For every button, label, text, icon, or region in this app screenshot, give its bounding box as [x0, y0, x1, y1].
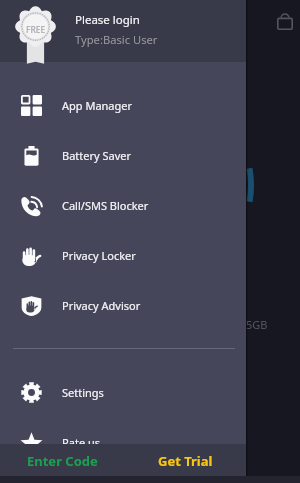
- button[interactable]: Battery Saver: [0, 130, 246, 180]
- button[interactable]: Please login: [0, 0, 246, 62]
- staticText: 5GB: [246, 317, 268, 332]
- staticText: Get Trial: [158, 452, 213, 470]
- staticText: Call/SMS Blocker: [62, 198, 149, 213]
- staticText: Privacy Advisor: [62, 298, 141, 313]
- button[interactable]: Store: [270, 6, 300, 36]
- staticText: Enter Code: [27, 452, 98, 470]
- button[interactable]: Get Trial: [125, 444, 246, 476]
- staticText: Rate us: [62, 435, 101, 450]
- staticText: Privacy Locker: [62, 248, 136, 263]
- button[interactable]: Enter Code: [0, 444, 125, 476]
- button[interactable]: Rate us: [0, 417, 246, 467]
- button[interactable]: App Manager: [0, 80, 246, 130]
- button[interactable]: Call/SMS Blocker: [0, 180, 246, 230]
- staticText: Please login: [75, 12, 140, 28]
- staticText: Battery Saver: [62, 148, 132, 163]
- staticText: App Manager: [62, 98, 133, 113]
- button[interactable]: Settings: [0, 367, 246, 417]
- button[interactable]: Privacy Locker: [0, 230, 246, 280]
- staticText: FREE: [26, 24, 46, 36]
- button[interactable]: Privacy Advisor: [0, 280, 246, 330]
- staticText: Type:Basic User: [75, 32, 158, 47]
- staticText: Settings: [62, 385, 104, 400]
